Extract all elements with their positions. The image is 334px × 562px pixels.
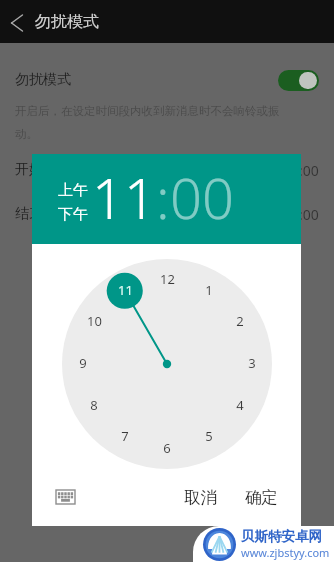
staticText: 9	[79, 354, 87, 372]
staticText: 确定	[245, 487, 278, 508]
staticText: 23:00	[283, 161, 319, 180]
staticText: 结束时间	[15, 205, 71, 223]
staticText: 7	[121, 427, 129, 445]
button[interactable]: 上午	[58, 181, 88, 200]
button[interactable]: 00	[170, 159, 234, 235]
staticText: 勿扰模式	[15, 71, 71, 89]
button[interactable]: Toggle Do Not Disturb	[278, 70, 319, 91]
staticText: 勿扰模式	[35, 12, 99, 32]
button[interactable]: 11	[92, 159, 156, 235]
staticText: 11	[92, 159, 156, 235]
staticText: 3	[248, 354, 256, 372]
staticText: 下午	[58, 205, 88, 224]
staticText: www.zjbstyy.com	[241, 545, 330, 560]
button[interactable]: 结束时间	[0, 192, 334, 236]
staticText: :	[156, 159, 170, 235]
staticText: 8	[90, 396, 98, 414]
staticText: 贝斯特安卓网	[241, 528, 322, 545]
button[interactable]: 开始时间	[0, 148, 334, 192]
button[interactable]: 取消	[176, 481, 225, 514]
staticText: 1	[205, 281, 213, 299]
staticText: 10	[87, 312, 102, 330]
staticText: 取消	[184, 487, 217, 508]
staticText: 11	[118, 281, 133, 299]
staticText: 5	[205, 427, 213, 445]
staticText: 开始时间	[15, 161, 71, 179]
button[interactable]: 确定	[237, 481, 286, 514]
staticText: 2	[236, 312, 244, 330]
staticText: 07:00	[283, 205, 319, 224]
button[interactable]: 下午	[58, 205, 88, 224]
staticText: 12	[160, 270, 175, 288]
staticText: 4	[236, 396, 244, 414]
staticText: 上午	[58, 181, 88, 200]
button[interactable]: Switch to keyboard input	[56, 490, 75, 504]
staticText: 00	[170, 159, 234, 235]
staticText: 6	[163, 439, 171, 457]
staticText: 开启后，在设定时间段内收到新消息时不会响铃或振 动。	[15, 104, 280, 142]
button[interactable]: Back	[0, 5, 34, 39]
